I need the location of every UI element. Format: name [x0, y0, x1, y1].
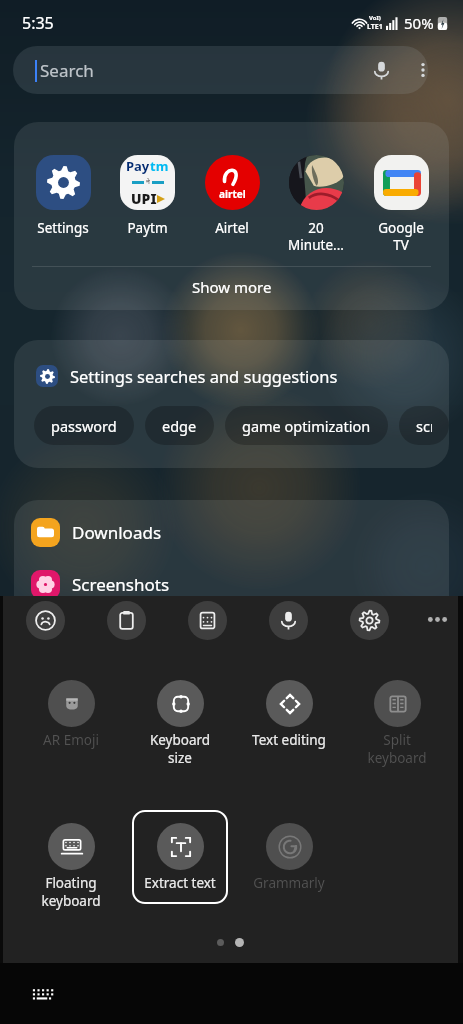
staticText: Floating keyboard [23, 874, 119, 910]
button[interactable]: Voice search [362, 51, 400, 89]
button[interactable]: Emoji [26, 601, 65, 640]
staticText: Search [40, 59, 94, 82]
staticText: game optimization [242, 416, 371, 436]
button[interactable]: Settings [22, 155, 104, 237]
button[interactable]: Keyboard modes [188, 601, 227, 640]
button[interactable]: Floating keyboard [23, 810, 119, 904]
button[interactable]: password [34, 406, 134, 445]
staticText: 5:35 [22, 12, 54, 34]
staticText: Keyboard size [132, 731, 228, 767]
button[interactable]: Downloads [14, 516, 449, 548]
staticText: Extract text [132, 874, 228, 892]
button[interactable]: Settings [350, 601, 389, 640]
button[interactable]: airtel [191, 155, 273, 237]
staticText: AR Emoji [23, 731, 119, 749]
staticText: Settings [37, 219, 89, 237]
staticText: Downloads [72, 521, 162, 544]
button[interactable]: More [417, 600, 457, 639]
button[interactable]: Keyboard size [132, 667, 228, 761]
staticText: edge [162, 416, 197, 436]
staticText: Google TV [378, 219, 424, 254]
staticText: Grammarly [241, 874, 337, 892]
staticText: LTE1 [367, 22, 383, 32]
staticText: tm [150, 157, 169, 175]
button[interactable]: Search [13, 46, 428, 94]
staticText: UPI [131, 189, 157, 208]
button[interactable]: Extract text [132, 810, 228, 904]
button[interactable]: edge [145, 406, 214, 445]
staticText: Paytm [127, 219, 168, 237]
staticText: Text editing [241, 731, 337, 749]
button[interactable]: Google TV [360, 155, 442, 254]
staticText: VoI) [369, 14, 381, 22]
staticText: 50% [404, 13, 434, 33]
staticText: Settings searches and suggestions [70, 365, 338, 387]
staticText: airtel [219, 187, 246, 201]
button[interactable]: Text editing [241, 667, 337, 761]
staticText: Airtel [215, 219, 249, 237]
staticText: Pay [126, 157, 150, 175]
button[interactable]: scree [399, 406, 449, 445]
button[interactable]: game optimization [225, 406, 388, 445]
staticText: Split keyboard [349, 731, 445, 767]
button[interactable]: Pay [106, 155, 188, 237]
button[interactable]: Voice input [269, 601, 308, 640]
button[interactable]: Hide keyboard [24, 976, 60, 1012]
button[interactable]: AR Emoji [23, 667, 119, 761]
staticText: password [51, 416, 117, 436]
button[interactable]: More options [404, 51, 442, 89]
button[interactable]: Split keyboard [349, 667, 445, 761]
staticText: Screenshots [72, 573, 170, 596]
staticText: ने [146, 177, 150, 187]
button[interactable]: 20 Minute... [275, 155, 357, 254]
staticText: 20 Minute... [288, 219, 344, 254]
button[interactable]: Screenshots [14, 568, 449, 600]
button[interactable]: Grammarly [241, 810, 337, 904]
staticText: Show more [192, 277, 272, 297]
staticText: scree [416, 416, 432, 436]
button[interactable]: Show more [14, 267, 449, 307]
button[interactable]: Clipboard [107, 601, 146, 640]
